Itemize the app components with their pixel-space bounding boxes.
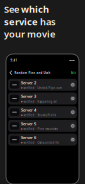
button[interactable]: Server 5 <box>8 120 77 132</box>
staticText: verified · Daria united fm <box>23 141 58 144</box>
staticText: Server 3 <box>21 94 36 99</box>
staticText: See which <box>4 3 49 15</box>
button[interactable]: Server 2 <box>8 79 77 91</box>
staticText: service has <box>4 15 56 28</box>
staticText: Edit <box>71 71 76 75</box>
staticText: verified · Pine mountain <box>23 127 58 131</box>
staticText: Random Pine and Utah <box>14 71 50 75</box>
staticText: your movie <box>4 28 55 40</box>
staticText: Server 4 <box>21 107 36 113</box>
staticText: verified · United Pipe rum <box>23 86 61 90</box>
button[interactable]: Back <box>9 70 13 76</box>
button[interactable]: Server 3 <box>8 92 77 104</box>
button[interactable]: Server 4 <box>8 106 77 118</box>
staticText: verified · Kappa ring set <box>23 100 57 103</box>
staticText: 9:41 <box>10 59 17 62</box>
button[interactable]: Server 6 <box>8 134 77 146</box>
button[interactable]: Edit <box>71 71 76 75</box>
staticText: Server 2 <box>21 80 36 85</box>
staticText: Server 6 <box>21 135 36 140</box>
staticText: verified · Snowly flix hd <box>23 113 56 117</box>
staticText: Server 5 <box>21 121 36 126</box>
